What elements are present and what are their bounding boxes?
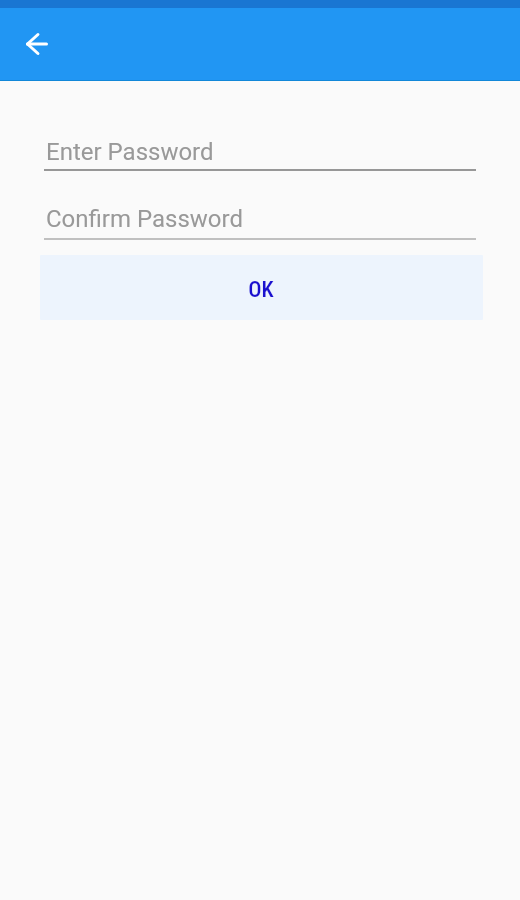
button[interactable]: Enter Password <box>44 138 476 171</box>
staticText: Enter Password <box>46 138 214 166</box>
staticText: OK <box>248 277 274 303</box>
button[interactable]: OK <box>40 255 483 320</box>
button[interactable]: Confirm Password <box>44 205 476 240</box>
button[interactable]: Navigate back <box>13 20 60 67</box>
staticText: Confirm Password <box>46 205 244 233</box>
